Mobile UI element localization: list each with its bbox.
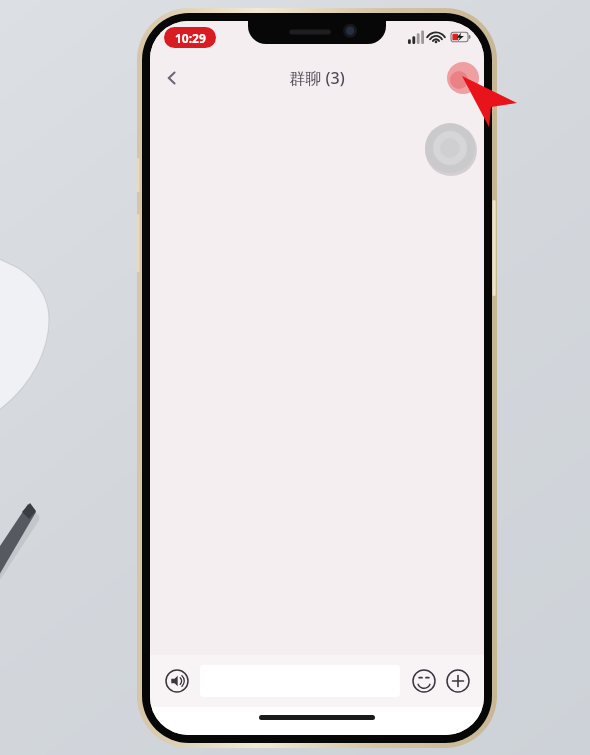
button[interactable]: Back [150, 57, 194, 99]
staticText: 10:29 [175, 30, 206, 46]
staticText: 群聊 (3) [289, 67, 345, 89]
button[interactable]: Emoji [408, 665, 440, 697]
button[interactable]: More options [440, 57, 484, 99]
button[interactable]: Voice input [160, 664, 194, 698]
button[interactable]: More functions [442, 665, 474, 697]
